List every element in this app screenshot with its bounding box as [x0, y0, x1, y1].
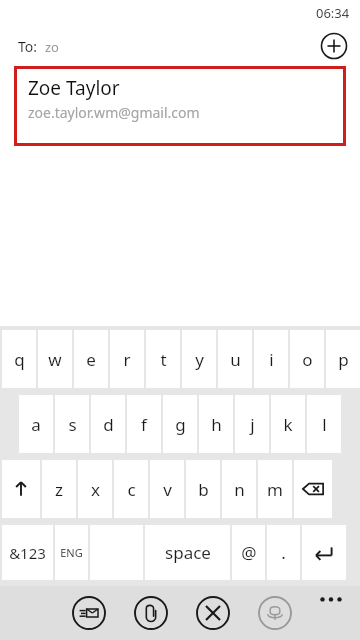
button[interactable]: i	[254, 330, 288, 388]
button[interactable]: Add recipient	[320, 32, 348, 60]
button[interactable]: j	[235, 395, 269, 453]
staticText: 06:34	[316, 4, 350, 22]
button[interactable]: p	[326, 330, 360, 388]
staticText: Zoe Taylor	[28, 75, 120, 101]
button[interactable]: q	[2, 330, 36, 388]
button[interactable]: Shift	[2, 460, 40, 518]
staticText: n	[234, 478, 245, 501]
button[interactable]: r	[110, 330, 144, 388]
button[interactable]: n	[222, 460, 256, 518]
staticText: &123	[9, 543, 46, 563]
button[interactable]: Voice input	[258, 596, 292, 630]
staticText: c	[127, 478, 136, 501]
staticText: s	[68, 413, 77, 436]
staticText: ENG	[60, 545, 83, 560]
staticText: space	[165, 541, 211, 564]
button[interactable]: Close	[196, 596, 230, 630]
button[interactable]: o	[290, 330, 324, 388]
staticText: .	[281, 541, 286, 564]
button[interactable]: h	[199, 395, 233, 453]
button[interactable]: .	[267, 525, 300, 580]
staticText: v	[163, 478, 172, 501]
button[interactable]: u	[218, 330, 252, 388]
button[interactable]: t	[146, 330, 180, 388]
button[interactable]: ENG	[55, 525, 88, 580]
button[interactable]: More options	[316, 594, 346, 624]
staticText: b	[198, 478, 209, 501]
button[interactable]: e	[74, 330, 108, 388]
button[interactable]: @	[232, 525, 265, 580]
button[interactable]: Backspace	[294, 460, 332, 518]
button[interactable]: z	[42, 460, 76, 518]
staticText: @	[241, 541, 257, 564]
button[interactable]: Attach	[134, 596, 168, 630]
staticText: d	[103, 413, 114, 436]
button[interactable]: w	[38, 330, 72, 388]
button[interactable]: Send	[72, 596, 106, 630]
button[interactable]: k	[271, 395, 305, 453]
button[interactable]: s	[55, 395, 89, 453]
staticText: m	[267, 478, 283, 501]
button[interactable]: l	[307, 395, 341, 453]
staticText: j	[250, 413, 255, 436]
staticText: l	[322, 413, 327, 436]
staticText: x	[91, 478, 100, 501]
staticText: f	[141, 413, 147, 436]
staticText: q	[14, 348, 25, 371]
staticText: o	[302, 348, 313, 371]
button[interactable]: g	[163, 395, 197, 453]
staticText: r	[123, 348, 131, 371]
staticText: t	[160, 348, 167, 371]
button[interactable]: &123	[2, 525, 53, 580]
staticText: k	[283, 413, 293, 436]
staticText: e	[86, 348, 96, 371]
staticText: y	[195, 348, 204, 371]
staticText: i	[269, 348, 274, 371]
button[interactable]: c	[114, 460, 148, 518]
staticText: To:	[18, 37, 38, 56]
staticText: zoe.taylor.wm@gmail.com	[28, 103, 200, 122]
button[interactable]: v	[150, 460, 184, 518]
button[interactable]: a	[19, 395, 53, 453]
button[interactable]: m	[258, 460, 292, 518]
button[interactable]: f	[127, 395, 161, 453]
staticText: h	[211, 413, 222, 436]
staticText: p	[338, 348, 349, 371]
staticText: zo	[45, 38, 59, 56]
button[interactable]: y	[182, 330, 216, 388]
staticText: u	[230, 348, 241, 371]
staticText: a	[31, 413, 41, 436]
staticText: g	[175, 413, 186, 436]
button[interactable]: d	[91, 395, 125, 453]
button[interactable]: space	[145, 525, 230, 580]
button[interactable]: x	[78, 460, 112, 518]
staticText: z	[55, 478, 63, 501]
button[interactable]: b	[186, 460, 220, 518]
button[interactable]: Zoe Taylor	[14, 66, 346, 146]
staticText: w	[48, 348, 62, 371]
button[interactable]: Enter	[302, 525, 346, 580]
